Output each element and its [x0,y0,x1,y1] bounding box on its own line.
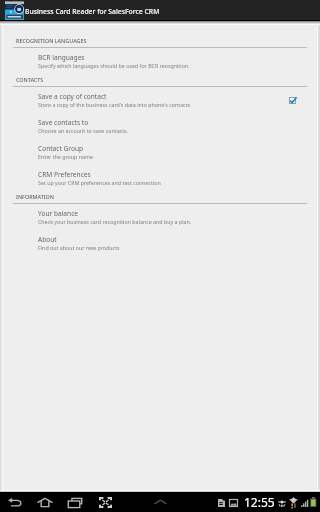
staticText: Enter the group name [38,153,93,160]
button[interactable]: Home [37,498,53,507]
button[interactable]: BCR languages [0,48,320,74]
staticText: Business Card Reader for SalesForce CRM [25,7,160,16]
staticText: Save contacts to [38,118,89,127]
button[interactable]: Your balance [0,204,320,230]
button[interactable]: Save a copy of contact [0,87,320,113]
staticText: 12:55 [244,494,275,510]
staticText: Set up your CRM preferences and test con… [38,179,161,186]
staticText: INFORMATION [16,193,55,200]
staticText: BCR languages [38,53,85,62]
staticText: Store a copy of the business card's data… [38,101,191,108]
staticText: RECOGNITION LANGUAGES [16,37,87,44]
button[interactable]: About [0,230,320,256]
button[interactable]: Resize screen [99,497,112,508]
button[interactable]: Show navigation [154,499,167,505]
staticText: CRM Preferences [38,170,91,179]
staticText: Contact Group [38,144,84,153]
staticText: Your balance [38,209,79,218]
button[interactable]: Contact Group [0,139,320,165]
staticText: Check your business card recognition bal… [38,218,192,225]
button[interactable]: Back [8,498,22,507]
button[interactable]: Recent apps [68,498,82,508]
button[interactable]: Save contacts to [0,113,320,139]
staticText: CONTACTS [16,76,44,83]
staticText: Find out about our new products [38,244,120,251]
button[interactable]: CRM Preferences [0,165,320,191]
staticText: Specify which languages should be used f… [38,62,190,69]
staticText: Save a copy of contact [38,92,107,101]
staticText: About [38,235,57,244]
staticText: Choose an account to save contacts. [38,127,129,134]
